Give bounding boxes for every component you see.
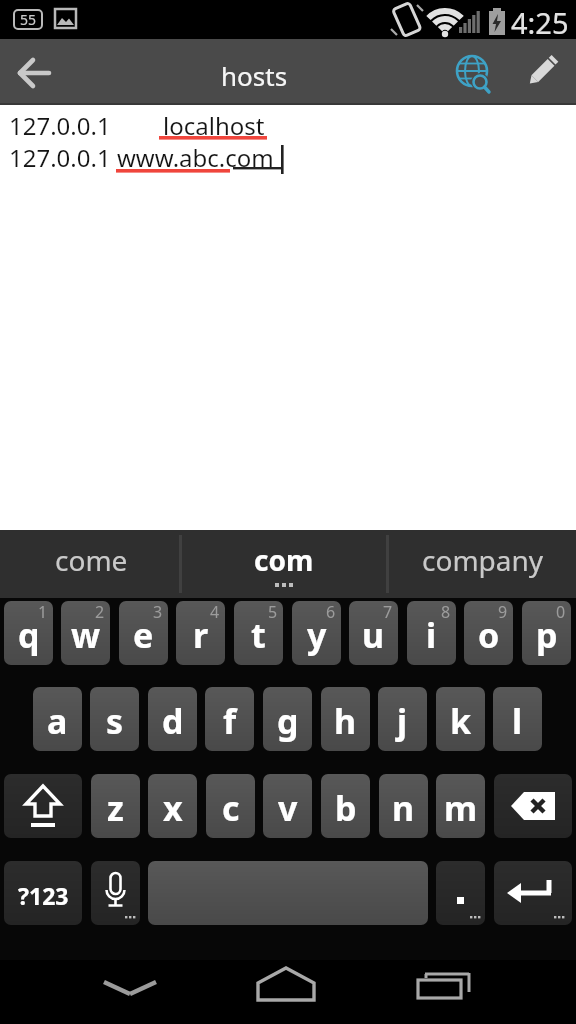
staticText: v: [278, 785, 298, 831]
staticText: 3: [153, 601, 163, 623]
button[interactable]: a: [33, 687, 82, 751]
staticText: g: [277, 698, 299, 744]
staticText: 4: [210, 601, 220, 623]
button[interactable]: [6, 46, 58, 98]
button[interactable]: [252, 960, 324, 1024]
button[interactable]: h: [321, 687, 370, 751]
button[interactable]: r: [176, 601, 225, 665]
staticText: www.abc.com: [117, 141, 274, 174]
staticText: 5: [268, 601, 278, 623]
staticText: r: [193, 612, 209, 658]
staticText: u: [362, 612, 385, 658]
staticText: com: [254, 541, 314, 579]
button[interactable]: [448, 47, 500, 99]
staticText: 1: [38, 601, 48, 623]
button[interactable]: s: [90, 687, 139, 751]
button[interactable]: 127.0.0.1: [0, 105, 576, 530]
button[interactable]: x: [148, 774, 197, 838]
staticText: d: [162, 698, 184, 744]
button[interactable]: c: [206, 774, 255, 838]
button[interactable]: [494, 861, 572, 925]
button[interactable]: q: [4, 601, 53, 665]
button[interactable]: [94, 960, 166, 1024]
staticText: s: [106, 698, 124, 744]
button[interactable]: b: [321, 774, 370, 838]
button[interactable]: [389, 530, 576, 598]
button[interactable]: v: [263, 774, 312, 838]
staticText: 2: [95, 601, 105, 623]
button[interactable]: [436, 861, 485, 925]
staticText: y: [307, 612, 327, 658]
button[interactable]: i: [407, 601, 456, 665]
button[interactable]: [516, 47, 566, 97]
staticText: 8: [441, 601, 451, 623]
staticText: j: [397, 698, 408, 744]
staticText: i: [426, 612, 437, 658]
button[interactable]: [410, 960, 482, 1024]
button[interactable]: f: [205, 687, 254, 751]
staticText: 6: [326, 601, 336, 623]
staticText: e: [133, 612, 154, 658]
staticText: 127.0.0.1: [9, 141, 111, 174]
button[interactable]: [0, 530, 179, 598]
staticText: p: [536, 612, 558, 658]
button[interactable]: [494, 774, 572, 838]
staticText: k: [450, 698, 472, 744]
staticText: 55: [20, 10, 37, 29]
staticText: 7: [383, 601, 393, 623]
button[interactable]: d: [148, 687, 197, 751]
button[interactable]: j: [378, 687, 427, 751]
staticText: 127.0.0.1: [9, 109, 111, 142]
staticText: h: [334, 698, 357, 744]
button[interactable]: [91, 861, 140, 925]
staticText: ?123: [18, 880, 69, 911]
staticText: come: [55, 541, 128, 579]
button[interactable]: m: [436, 774, 485, 838]
staticText: 0: [556, 601, 566, 623]
button[interactable]: p: [522, 601, 571, 665]
button[interactable]: t: [234, 601, 283, 665]
staticText: 4:25: [511, 3, 569, 42]
staticText: w: [71, 612, 101, 658]
button[interactable]: u: [349, 601, 398, 665]
button[interactable]: k: [436, 687, 485, 751]
staticText: c: [222, 785, 240, 831]
button[interactable]: y: [292, 601, 341, 665]
staticText: m: [444, 785, 478, 831]
staticText: 9: [498, 601, 508, 623]
button[interactable]: [148, 861, 428, 925]
staticText: t: [251, 612, 266, 658]
staticText: hosts: [221, 58, 288, 93]
staticText: q: [18, 612, 40, 658]
staticText: f: [223, 698, 237, 744]
button[interactable]: ?123: [4, 861, 82, 925]
staticText: n: [392, 785, 415, 831]
staticText: z: [107, 785, 124, 831]
button[interactable]: [182, 530, 386, 598]
button[interactable]: o: [464, 601, 513, 665]
button[interactable]: n: [379, 774, 428, 838]
button[interactable]: g: [263, 687, 312, 751]
button[interactable]: w: [61, 601, 110, 665]
button[interactable]: l: [493, 687, 542, 751]
staticText: o: [478, 612, 500, 658]
button[interactable]: e: [119, 601, 168, 665]
staticText: a: [47, 698, 68, 744]
button[interactable]: z: [91, 774, 140, 838]
button[interactable]: [4, 774, 82, 838]
staticText: b: [335, 785, 357, 831]
staticText: localhost: [163, 109, 265, 142]
staticText: company: [422, 541, 544, 579]
staticText: l: [512, 698, 523, 744]
staticText: x: [163, 785, 183, 831]
